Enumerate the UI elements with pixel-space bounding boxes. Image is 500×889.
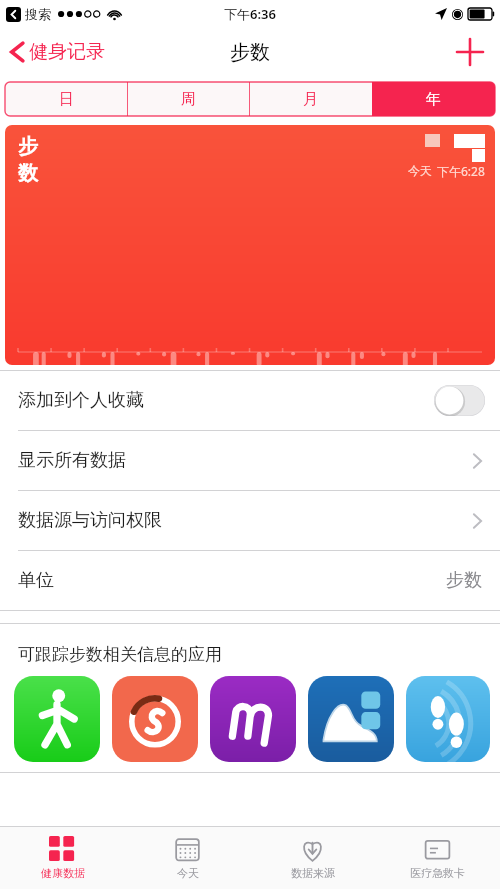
staticText: 下午6:28 xyxy=(437,163,485,179)
staticText: 下午6:36 xyxy=(224,5,276,23)
staticText: 今天 xyxy=(408,163,432,178)
button[interactable]: 周 xyxy=(127,82,249,116)
button[interactable]: App xyxy=(210,676,296,762)
button[interactable]: 医疗急救卡 xyxy=(375,827,500,889)
staticText: 添加到个人收藏 xyxy=(18,389,434,412)
staticText: 年 xyxy=(426,90,441,109)
staticText: 可跟踪步数相关信息的应用 xyxy=(18,644,222,665)
staticText: 显示所有数据 xyxy=(18,449,473,472)
button[interactable]: 年 xyxy=(372,82,495,116)
staticText: 搜索 xyxy=(25,6,51,22)
staticText: 单位 xyxy=(18,569,446,592)
button[interactable]: 数据来源 xyxy=(250,827,375,889)
staticText: 周 xyxy=(181,90,196,109)
staticText: 健身记录 xyxy=(29,40,105,64)
button[interactable]: App xyxy=(14,676,100,762)
button[interactable]: 今天 xyxy=(125,827,250,889)
button[interactable]: Add to favorites toggle xyxy=(434,385,485,416)
staticText: 月 xyxy=(303,90,318,109)
staticText: 日 xyxy=(59,90,74,109)
button[interactable]: App xyxy=(406,676,490,762)
button[interactable]: 月 xyxy=(249,82,372,116)
button[interactable]: App xyxy=(308,676,394,762)
button[interactable]: 数据源与访问权限 xyxy=(0,491,500,550)
button[interactable]: 添加到个人收藏 xyxy=(0,371,500,430)
button[interactable]: 健康数据 xyxy=(0,827,125,889)
button[interactable]: 健身记录 xyxy=(10,36,113,68)
staticText: 今天 xyxy=(177,866,199,880)
button[interactable]: 日 xyxy=(5,82,127,116)
staticText: 步数 xyxy=(230,40,270,65)
button[interactable]: 步数 xyxy=(5,125,495,365)
button[interactable]: Add xyxy=(450,32,490,72)
staticText: 健康数据 xyxy=(41,866,85,880)
staticText: 数据源与访问权限 xyxy=(18,509,473,532)
button[interactable]: App xyxy=(112,676,198,762)
button[interactable]: 单位 xyxy=(0,551,500,610)
staticText: 步数 xyxy=(446,569,482,592)
button[interactable]: 显示所有数据 xyxy=(0,431,500,490)
staticText: 数据来源 xyxy=(291,866,335,880)
staticText: 医疗急救卡 xyxy=(410,866,465,880)
